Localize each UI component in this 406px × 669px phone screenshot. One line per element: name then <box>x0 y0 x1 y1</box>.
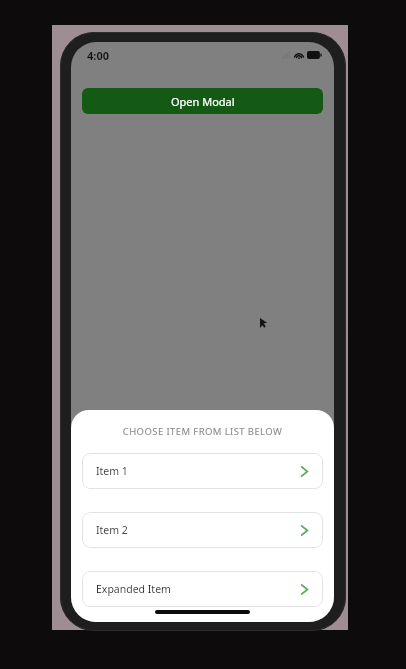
staticText: CHOOSE ITEM FROM LIST BELOW <box>71 425 334 438</box>
button[interactable]: Expanded Item <box>82 571 323 607</box>
button[interactable]: Open Modal <box>82 88 323 114</box>
other: Open Item 1 <box>300 465 309 478</box>
staticText: Expanded Item <box>96 582 171 596</box>
staticText: Item 2 <box>96 523 128 537</box>
staticText: Item 1 <box>96 464 128 478</box>
other: Open Item 2 <box>300 524 309 537</box>
staticText: 4:00 <box>87 48 109 63</box>
other: Open Expanded Item <box>300 583 309 596</box>
button[interactable]: Item 1 <box>82 453 323 489</box>
staticText: Open Modal <box>171 94 235 109</box>
button[interactable]: Item 2 <box>82 512 323 548</box>
